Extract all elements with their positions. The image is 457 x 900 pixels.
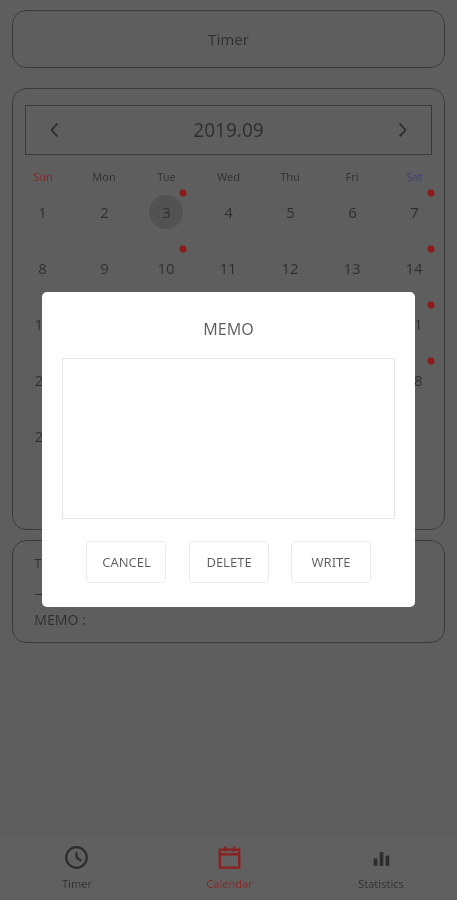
staticText: 4 [224,202,233,222]
button[interactable]: CANCEL [86,541,166,583]
button[interactable]: 6 [321,184,383,240]
staticText: Wed [217,169,240,184]
button[interactable]: DELETE [189,541,269,583]
button[interactable]: 21 [383,296,445,352]
button[interactable]: 14 [383,240,445,296]
staticText: 8 [38,258,47,278]
staticText: Sun [33,169,53,184]
button[interactable]: 26 [259,352,321,408]
staticText: 21 [405,314,423,334]
button[interactable]: 9 [73,240,135,296]
button[interactable]: Timer [12,10,445,68]
staticText: 29 [34,426,52,446]
staticText: 7 [410,202,419,222]
button[interactable]: 15 [12,296,73,352]
staticText: Statistics [358,876,404,891]
button[interactable]: 11 [197,240,259,296]
button[interactable]: 22 [12,352,73,408]
button[interactable]: Calendar [153,836,305,900]
staticText: 28 [405,370,423,390]
button[interactable]: 23 [73,352,135,408]
staticText: 9 [100,258,109,278]
button[interactable]: 7 [383,184,445,240]
staticText: 2 [100,202,109,222]
button[interactable]: 28 [383,352,445,408]
staticText: Timer [208,29,249,49]
staticText: — [34,584,48,602]
staticText: MEMO : [34,610,86,629]
button[interactable]: 3 [135,184,197,240]
button[interactable] [62,358,395,519]
button[interactable]: Previous month [25,105,85,155]
button[interactable]: 4 [197,184,259,240]
button[interactable] [383,408,445,464]
staticText: Thu [280,169,300,184]
button[interactable]: 27 [321,352,383,408]
staticText: 10 [157,258,175,278]
button[interactable]: WRITE [291,541,371,583]
staticText: Sat [406,169,423,184]
button[interactable]: TIME : 00:00:00 [12,540,445,643]
staticText: TIME : 00:00:00 [34,554,127,572]
staticText: 6 [348,202,357,222]
staticText: 3 [162,202,171,222]
button[interactable]: 12 [259,240,321,296]
button[interactable]: 25 [197,352,259,408]
staticText: 18 [219,314,237,334]
staticText: WRITE [311,553,351,571]
staticText: Calendar [206,876,253,891]
staticText: Mon [92,169,116,184]
button[interactable]: 2 [73,184,135,240]
button[interactable]: 1 [12,184,73,240]
staticText: 12 [281,258,299,278]
staticText: 1 [38,202,47,222]
button[interactable]: 5 [259,184,321,240]
staticText: Fri [345,169,359,184]
button[interactable]: 24 [135,352,197,408]
staticText: 11 [219,258,237,278]
staticText: MEMO [203,318,254,340]
staticText: 15 [34,314,52,334]
button[interactable]: Timer [0,836,153,900]
button[interactable]: 13 [321,240,383,296]
staticText: Timer [62,876,92,891]
staticText: 13 [343,258,361,278]
button[interactable]: Statistics [305,836,457,900]
button[interactable]: 18 [197,296,259,352]
staticText: 22 [34,370,52,390]
button[interactable]: 10 [135,240,197,296]
staticText: 14 [405,258,423,278]
staticText: 2019.09 [193,117,264,143]
button[interactable]: 8 [12,240,73,296]
staticText: DELETE [206,553,252,571]
staticText: CANCEL [102,553,151,571]
staticText: 5 [286,202,295,222]
staticText: Tue [157,169,176,184]
button[interactable]: 29 [12,408,73,464]
button[interactable]: Next month [372,105,432,155]
